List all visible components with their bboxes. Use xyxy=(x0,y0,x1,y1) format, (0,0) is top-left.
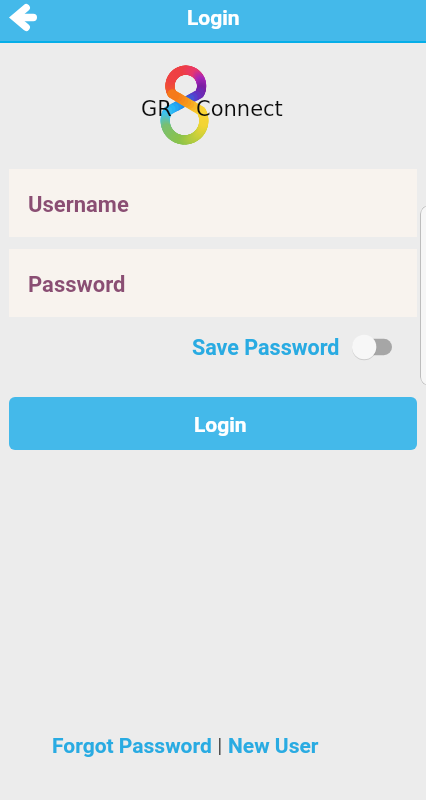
staticText: Login xyxy=(187,6,240,31)
button[interactable]: Username xyxy=(9,169,417,237)
button[interactable]: Back xyxy=(0,0,44,41)
staticText: | xyxy=(212,734,228,759)
button[interactable]: Forgot Password xyxy=(52,734,212,759)
button[interactable]: Save Password xyxy=(192,334,392,360)
staticText: Password xyxy=(28,272,126,298)
staticText: Save Password xyxy=(192,335,340,360)
staticText: GR xyxy=(141,97,172,121)
button[interactable]: Password xyxy=(9,249,417,317)
staticText: Connect xyxy=(196,97,283,121)
button[interactable]: New User xyxy=(228,734,319,759)
staticText: Login xyxy=(194,413,247,438)
staticText: Username xyxy=(28,192,129,218)
button[interactable]: Login xyxy=(9,397,417,450)
